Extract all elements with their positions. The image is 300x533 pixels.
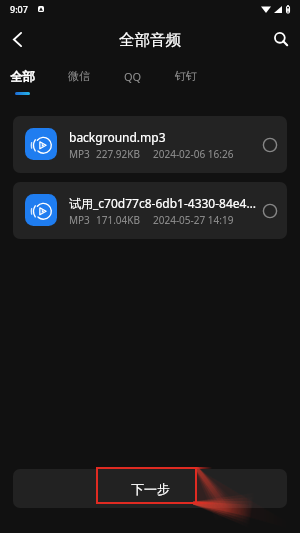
button[interactable]: Search xyxy=(264,22,298,56)
staticText: 2024-02-06 16:26 xyxy=(153,147,234,161)
button[interactable]: 下一步 xyxy=(13,469,287,508)
button[interactable]: 钉钉 xyxy=(160,62,212,98)
button[interactable]: 微信 xyxy=(53,62,105,98)
staticText: 2024-05-27 14:19 xyxy=(153,213,234,227)
staticText: 全部 xyxy=(10,69,35,85)
staticText: 微信 xyxy=(68,69,90,83)
button[interactable]: QQ xyxy=(107,62,159,98)
button[interactable]: 试用_c70d77c8-6db1-4330-84e4... xyxy=(13,182,287,239)
staticText: 钉钉 xyxy=(175,69,197,83)
staticText: MP3 xyxy=(69,147,90,161)
button[interactable]: background.mp3 xyxy=(13,116,287,173)
staticText: 227.92KB xyxy=(96,147,140,161)
staticText: 171.04KB xyxy=(96,213,140,227)
staticText: 试用_c70d77c8-6db1-4330-84e4... xyxy=(69,195,256,211)
staticText: 9:07 xyxy=(10,3,28,15)
staticText: MP3 xyxy=(69,213,90,227)
staticText: QQ xyxy=(124,69,142,84)
button[interactable]: 全部 xyxy=(0,62,48,98)
button[interactable]: Back xyxy=(0,22,34,56)
staticText: 全部音频 xyxy=(119,30,181,50)
staticText: 下一步 xyxy=(131,481,170,497)
staticText: background.mp3 xyxy=(69,129,166,145)
